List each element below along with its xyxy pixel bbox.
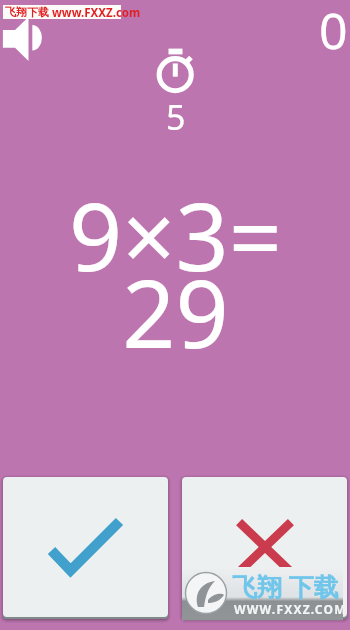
- button[interactable]: Wrong: [182, 477, 347, 617]
- staticText: 飞翔下载: [5, 5, 49, 19]
- staticText: 9×3= 29: [69, 172, 282, 376]
- staticText: www.FXXZ.com: [52, 5, 141, 19]
- staticText: 0: [319, 0, 348, 64]
- staticText: 5: [166, 94, 186, 140]
- staticText: WWW.FXXZ.COM: [234, 601, 347, 617]
- staticText: 飞翔 下载: [232, 569, 339, 603]
- button[interactable]: Sound: [0, 14, 46, 64]
- button[interactable]: Correct: [3, 477, 168, 617]
